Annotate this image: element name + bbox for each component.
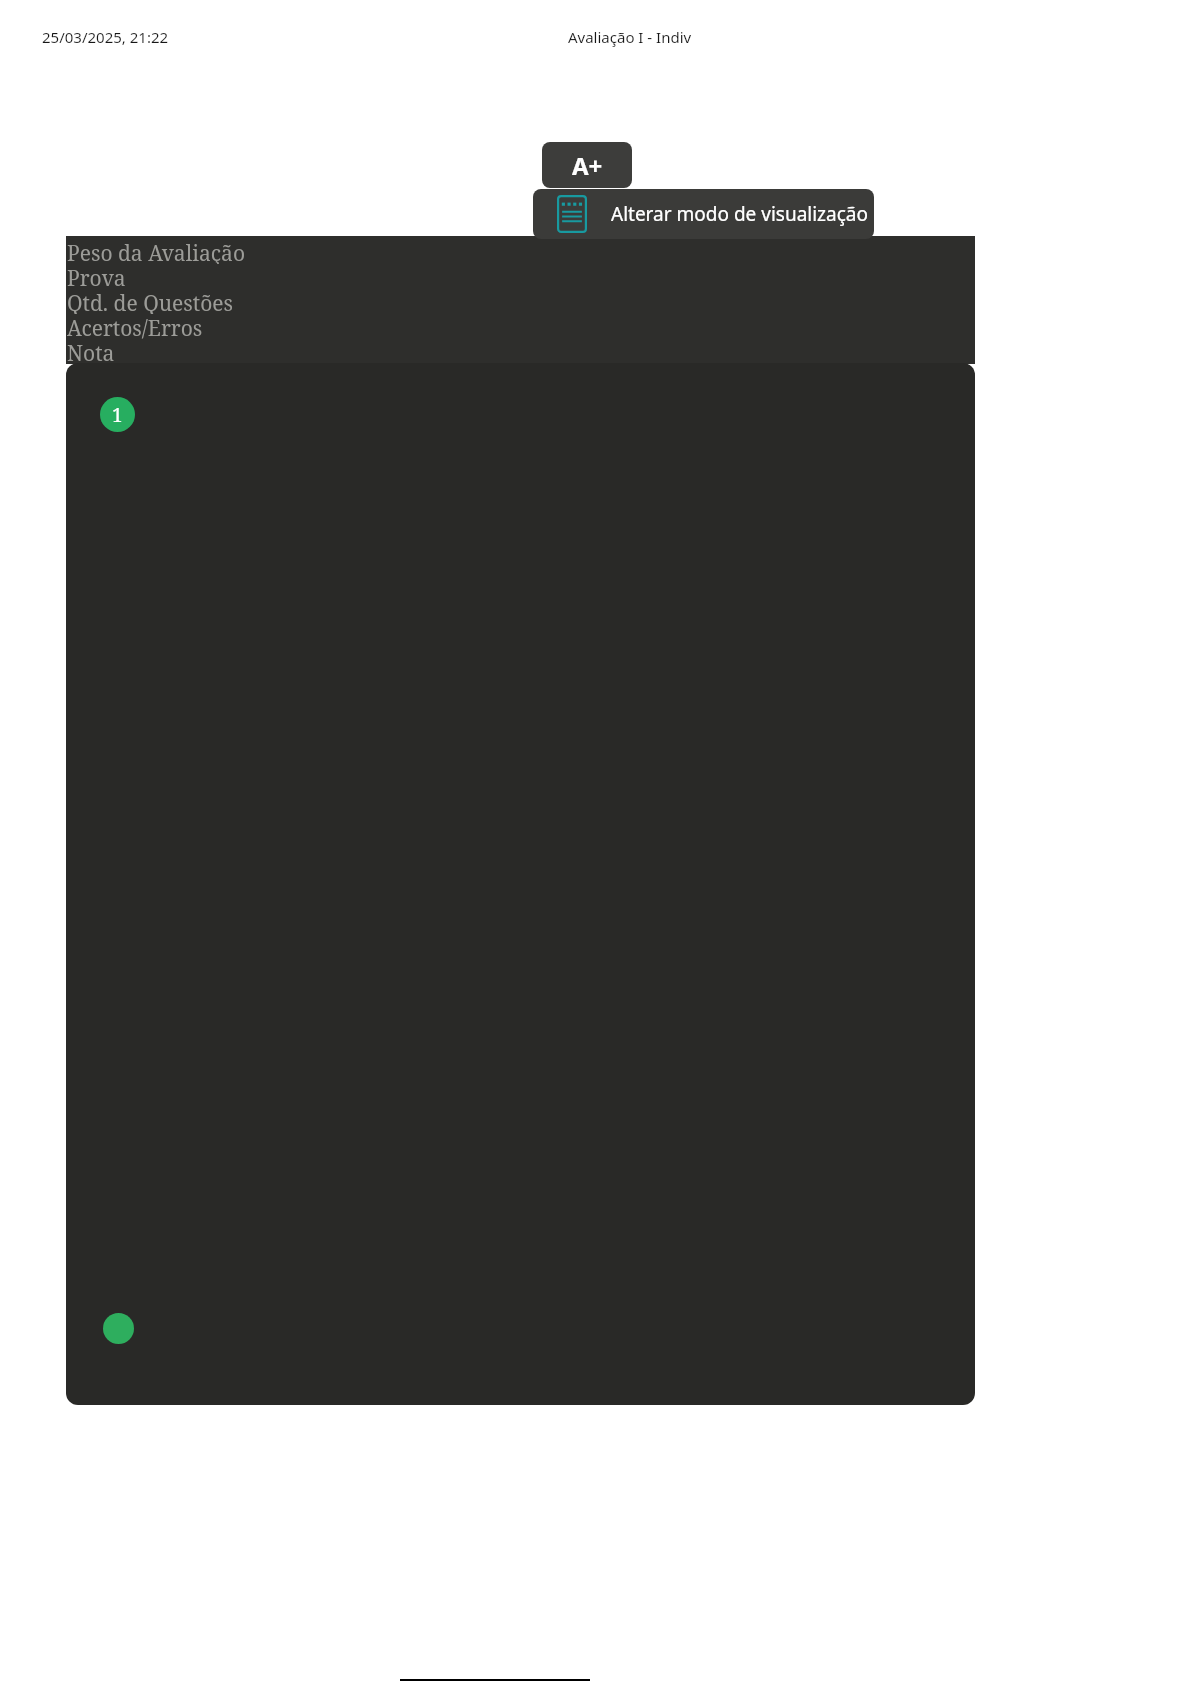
staticText: 25/03/2025, 21:22 xyxy=(42,27,169,47)
button[interactable]: A+ xyxy=(542,142,632,188)
staticText: Alterar modo de visualização xyxy=(611,201,868,227)
staticText: Avaliação I - Indiv xyxy=(568,27,692,47)
button[interactable]: Indicador de status xyxy=(103,1313,134,1344)
staticText: A+ xyxy=(572,149,603,182)
staticText: Qtd. de Questões xyxy=(67,289,234,314)
staticText: 1 xyxy=(112,402,123,428)
staticText: Prova xyxy=(67,264,126,289)
staticText: Nota xyxy=(67,339,115,364)
other: Alterar modo de visualização xyxy=(557,195,587,233)
button[interactable]: Alterar modo de visualização xyxy=(533,189,874,239)
staticText: Peso da Avaliação xyxy=(67,239,245,264)
staticText: Acertos/Erros xyxy=(67,314,203,339)
button[interactable]: 1 xyxy=(100,397,135,432)
button[interactable]: 1 xyxy=(66,363,975,1405)
